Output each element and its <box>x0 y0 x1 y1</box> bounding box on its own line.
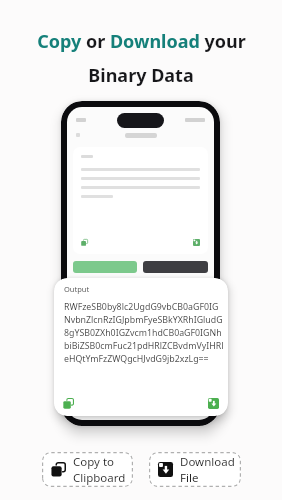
button[interactable]: Copy <box>63 398 74 409</box>
staticText: Output <box>64 284 90 294</box>
staticText: biBiZSB0cmFuc21pdHRlZCBvdmVyIHRl <box>64 340 224 353</box>
staticText: Binary Data <box>88 63 194 88</box>
button[interactable]: Copy to <box>42 452 133 487</box>
button[interactable]: Download <box>149 452 241 487</box>
staticText: Copy to <box>73 454 115 470</box>
staticText: 8gYSB0ZXh0IGZvcm1hdCB0aGF0IGNh <box>64 327 222 340</box>
staticText: File <box>180 470 199 486</box>
button[interactable]: Download <box>208 398 219 409</box>
staticText: Download <box>180 454 235 470</box>
staticText: NvbnZlcnRzIGJpbmFyeSBkYXRhIGludG <box>64 314 223 327</box>
staticText: Clipboard <box>73 470 126 486</box>
staticText: RWFzeSB0by8lc2UgdG9vbCB0aGF0IG <box>64 301 219 314</box>
staticText: eHQtYmFzZWQgcHJvdG9jb2xzLg== <box>64 353 209 366</box>
staticText: Copy or Download your <box>37 29 246 54</box>
